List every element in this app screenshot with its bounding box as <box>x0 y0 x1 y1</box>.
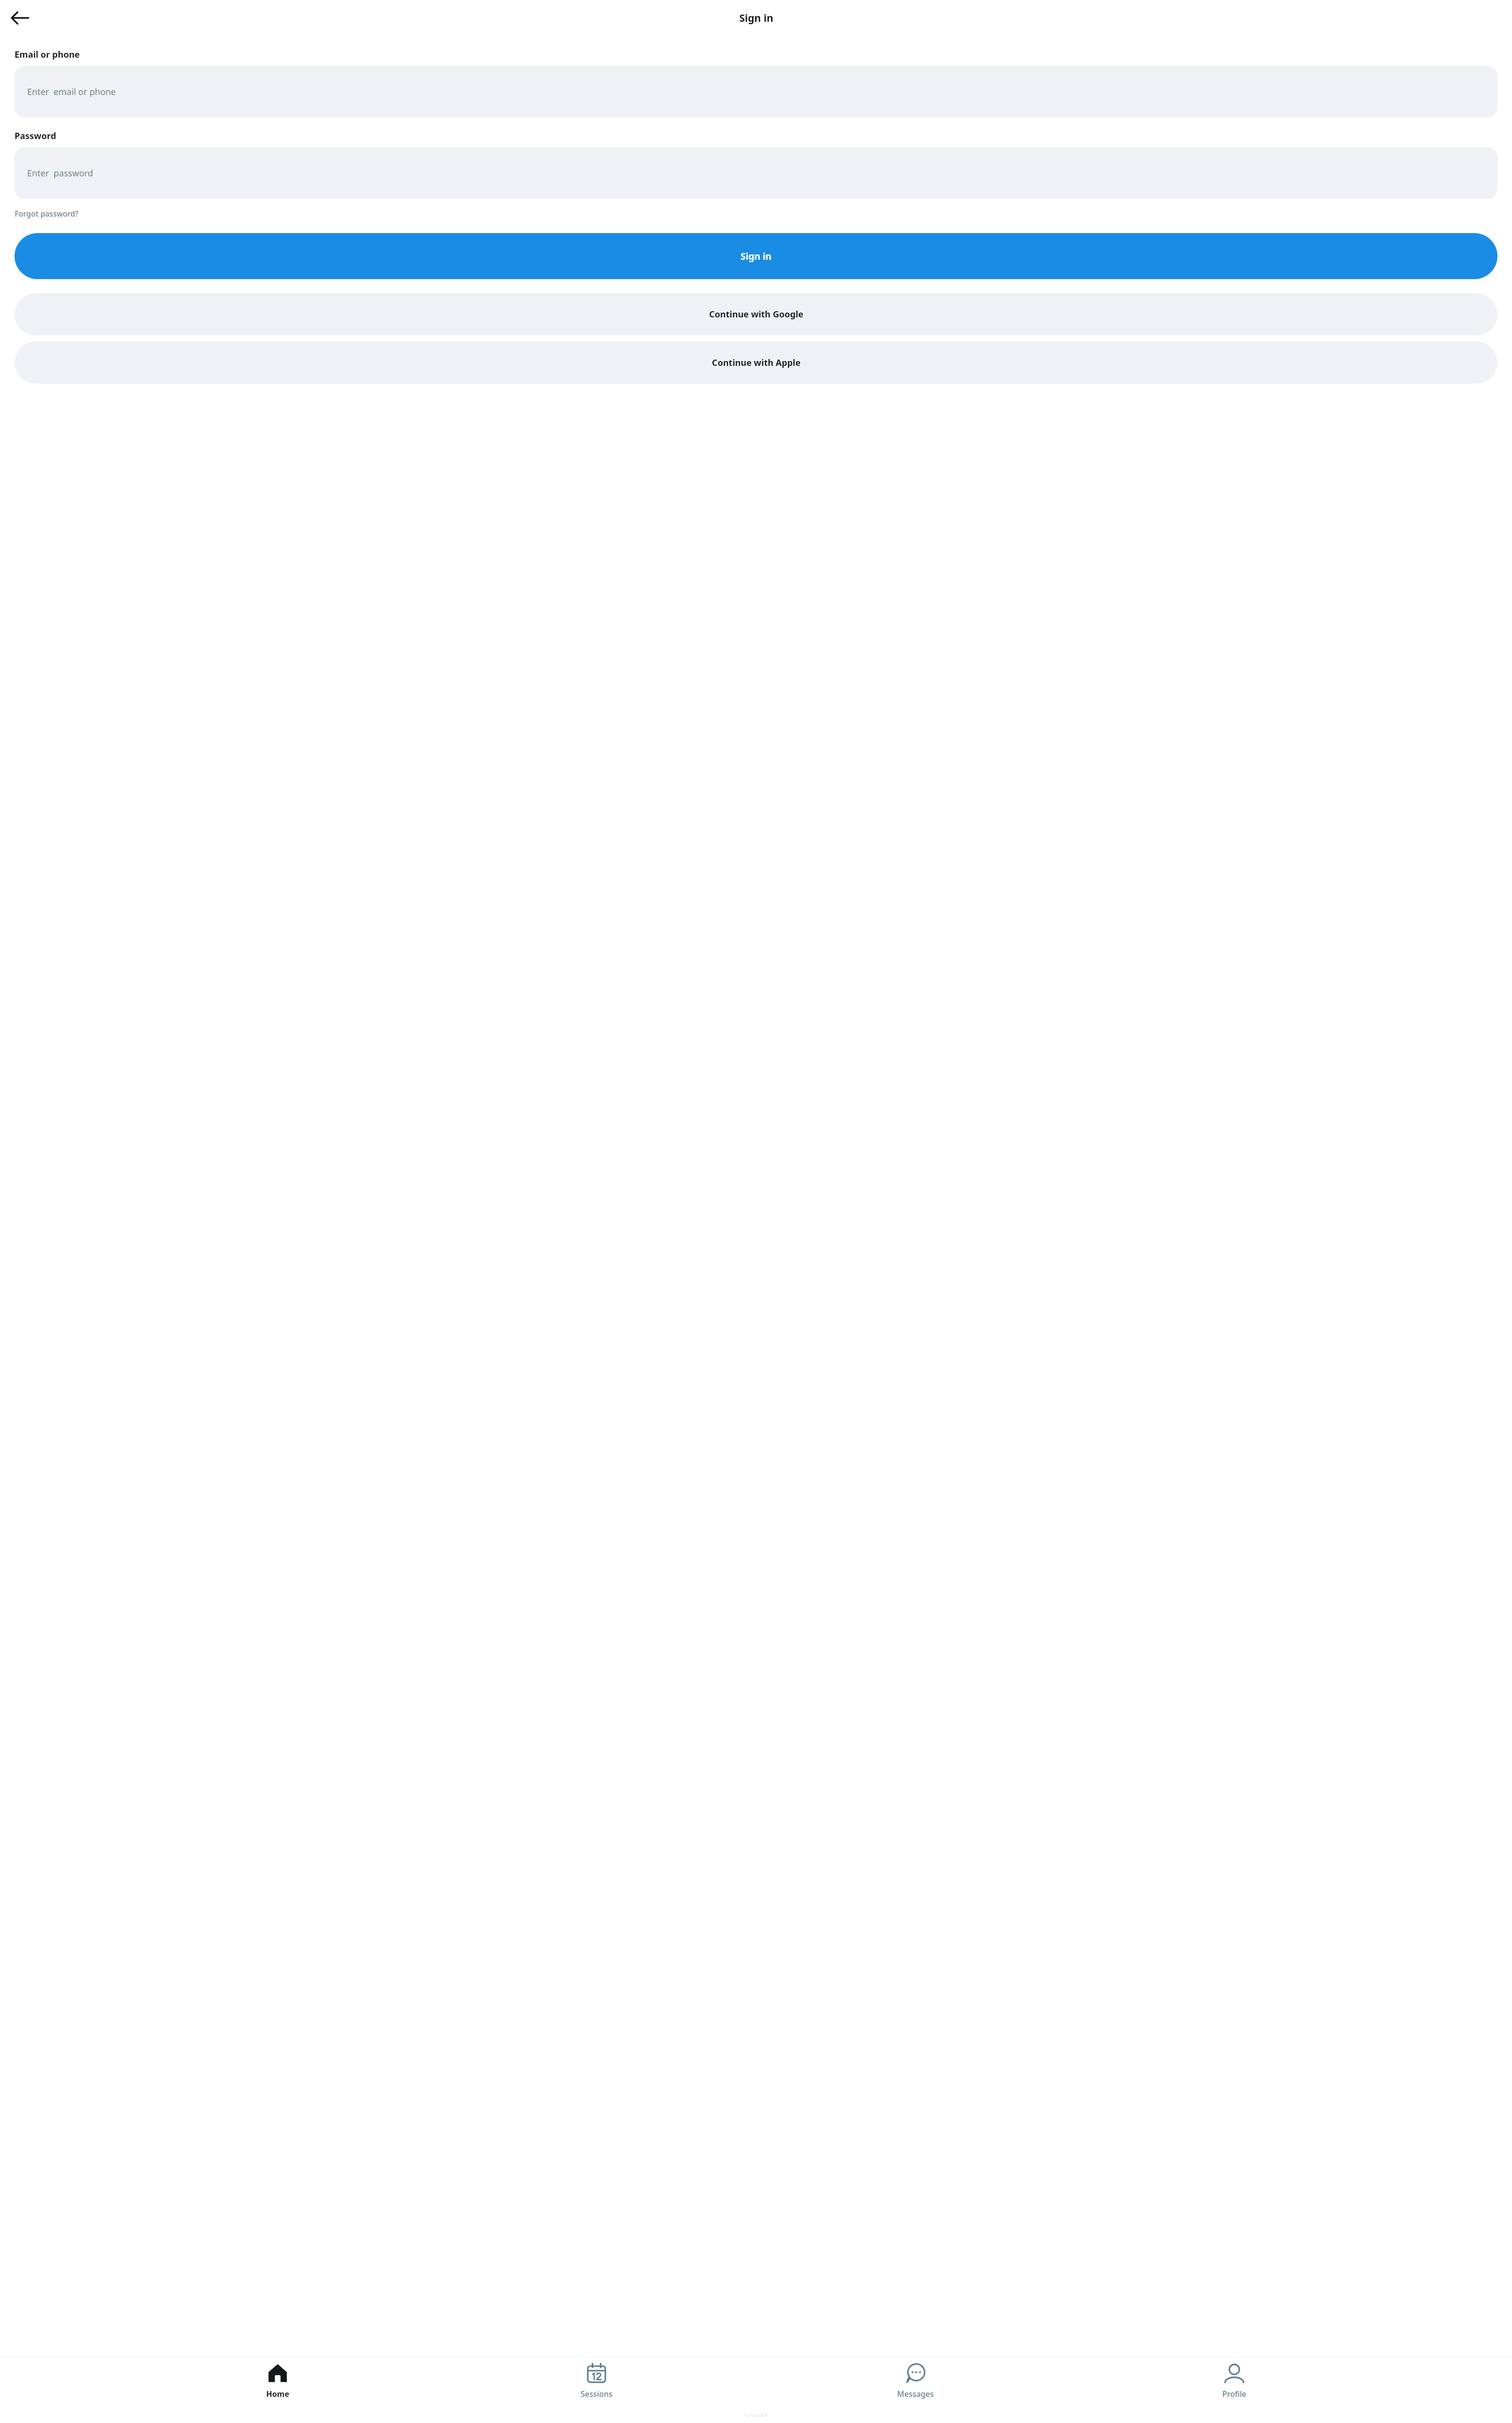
button[interactable]: Enter password <box>15 147 1497 199</box>
staticText: Continue with Google <box>709 308 803 320</box>
staticText: Sign in <box>739 11 773 25</box>
button[interactable]: Continue with Google <box>15 293 1497 335</box>
staticText: Messages <box>897 2389 934 2399</box>
button[interactable]: Home <box>236 2357 319 2399</box>
button[interactable]: Enter email or phone <box>15 66 1497 117</box>
staticText: Home <box>266 2389 289 2399</box>
staticText: Password <box>15 130 56 142</box>
staticText: Email or phone <box>15 48 80 61</box>
staticText: خمسات <box>744 2410 769 2418</box>
staticText: Forgot password? <box>15 208 79 219</box>
button[interactable]: Continue with Apple <box>15 342 1497 384</box>
staticText: Profile <box>1222 2389 1246 2399</box>
staticText: Enter password <box>27 167 94 179</box>
button[interactable]: Profile <box>1193 2357 1276 2399</box>
staticText: Sign in <box>740 250 772 263</box>
button[interactable]: Sessions <box>555 2357 638 2399</box>
button[interactable]: Forgot password? <box>15 207 79 220</box>
staticText: Enter email or phone <box>27 86 116 98</box>
button[interactable]: Messages <box>874 2357 957 2399</box>
button[interactable]: Sign in <box>15 233 1497 279</box>
staticText: Sessions <box>581 2389 613 2399</box>
button[interactable]: Back <box>7 5 33 31</box>
staticText: Continue with Apple <box>712 357 801 369</box>
